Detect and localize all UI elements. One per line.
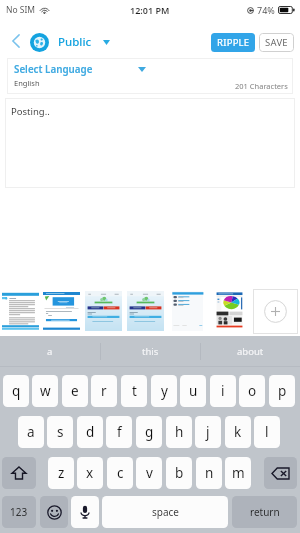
- staticText: 201 Characters: [235, 81, 288, 91]
- staticText: SAVE: [265, 36, 288, 49]
- button[interactable]: i: [210, 375, 236, 407]
- staticText: b: [175, 464, 184, 482]
- button[interactable]: k: [225, 416, 251, 448]
- button[interactable]: f: [106, 416, 132, 448]
- button[interactable]: return: [232, 496, 297, 528]
- button[interactable]: m: [225, 457, 251, 489]
- button[interactable]: j: [195, 416, 221, 448]
- button[interactable]: c: [107, 457, 133, 489]
- button[interactable]: Add attachment: [253, 289, 298, 334]
- button[interactable]: Attachment 5: [169, 291, 206, 331]
- staticText: 74%: [257, 4, 275, 16]
- button[interactable]: n: [196, 457, 222, 489]
- button[interactable]: u: [180, 375, 206, 407]
- button[interactable]: a: [0, 336, 100, 366]
- staticText: w: [40, 382, 51, 400]
- button[interactable]: t: [121, 375, 147, 407]
- staticText: c: [117, 464, 124, 482]
- button[interactable]: Dictation: [71, 496, 99, 528]
- staticText: i: [221, 382, 225, 400]
- button[interactable]: d: [77, 416, 103, 448]
- button[interactable]: h: [166, 416, 192, 448]
- button[interactable]: Attachment 4: [127, 291, 164, 331]
- staticText: x: [86, 464, 94, 482]
- staticText: j: [206, 423, 210, 441]
- staticText: h: [175, 423, 184, 441]
- staticText: r: [101, 382, 107, 400]
- staticText: g: [145, 423, 154, 441]
- staticText: about: [237, 345, 264, 358]
- button[interactable]: g: [136, 416, 162, 448]
- button[interactable]: 123: [2, 496, 36, 528]
- button[interactable]: Shift: [2, 457, 36, 489]
- button[interactable]: Public: [30, 32, 110, 52]
- button[interactable]: about: [201, 336, 300, 366]
- staticText: a: [27, 423, 35, 441]
- staticText: 12:01 PM: [130, 4, 170, 16]
- button[interactable]: y: [151, 375, 177, 407]
- staticText: e: [71, 382, 79, 400]
- staticText: a: [47, 345, 53, 358]
- staticText: n: [205, 464, 214, 482]
- button[interactable]: s: [47, 416, 73, 448]
- button[interactable]: Attachment 3: [85, 291, 122, 331]
- button[interactable]: r: [91, 375, 117, 407]
- button[interactable]: e: [62, 375, 88, 407]
- staticText: Posting..: [11, 105, 50, 118]
- staticText: d: [86, 423, 95, 441]
- button[interactable]: Back: [6, 30, 26, 52]
- button[interactable]: z: [48, 457, 74, 489]
- button[interactable]: Attachment 6: [211, 291, 248, 331]
- button[interactable]: space: [102, 496, 228, 528]
- staticText: q: [12, 382, 21, 400]
- staticText: y: [161, 382, 168, 400]
- button[interactable]: Emoji: [40, 496, 68, 528]
- staticText: m: [232, 464, 245, 482]
- button[interactable]: o: [239, 375, 265, 407]
- button[interactable]: Attachment 2: [43, 291, 80, 331]
- staticText: o: [248, 382, 257, 400]
- button[interactable]: RIPPLE: [211, 33, 255, 52]
- staticText: Select Language: [14, 63, 93, 76]
- staticText: 123: [10, 505, 28, 519]
- button[interactable]: this: [101, 336, 200, 366]
- staticText: s: [57, 423, 64, 441]
- button[interactable]: Attachment 1: [2, 291, 39, 331]
- button[interactable]: Posting..: [5, 98, 295, 188]
- staticText: p: [278, 382, 287, 400]
- button[interactable]: Backspace: [264, 457, 297, 489]
- staticText: v: [146, 464, 153, 482]
- staticText: No SIM: [6, 4, 36, 16]
- button[interactable]: p: [269, 375, 295, 407]
- button[interactable]: w: [32, 375, 58, 407]
- button[interactable]: x: [77, 457, 103, 489]
- button[interactable]: l: [254, 416, 280, 448]
- button[interactable]: a: [18, 416, 44, 448]
- button[interactable]: v: [136, 457, 162, 489]
- staticText: English: [14, 78, 40, 88]
- staticText: t: [132, 382, 137, 400]
- staticText: space: [152, 505, 179, 519]
- staticText: this: [142, 345, 159, 358]
- staticText: l: [265, 423, 269, 441]
- staticText: Public: [58, 34, 92, 50]
- button[interactable]: b: [166, 457, 192, 489]
- staticText: f: [117, 423, 122, 441]
- staticText: u: [189, 382, 198, 400]
- staticText: RIPPLE: [217, 36, 250, 49]
- staticText: return: [250, 505, 280, 519]
- button[interactable]: Select Language: [14, 63, 146, 76]
- staticText: k: [234, 423, 242, 441]
- button[interactable]: SAVE: [259, 33, 294, 52]
- staticText: z: [58, 464, 65, 482]
- button[interactable]: q: [3, 375, 29, 407]
